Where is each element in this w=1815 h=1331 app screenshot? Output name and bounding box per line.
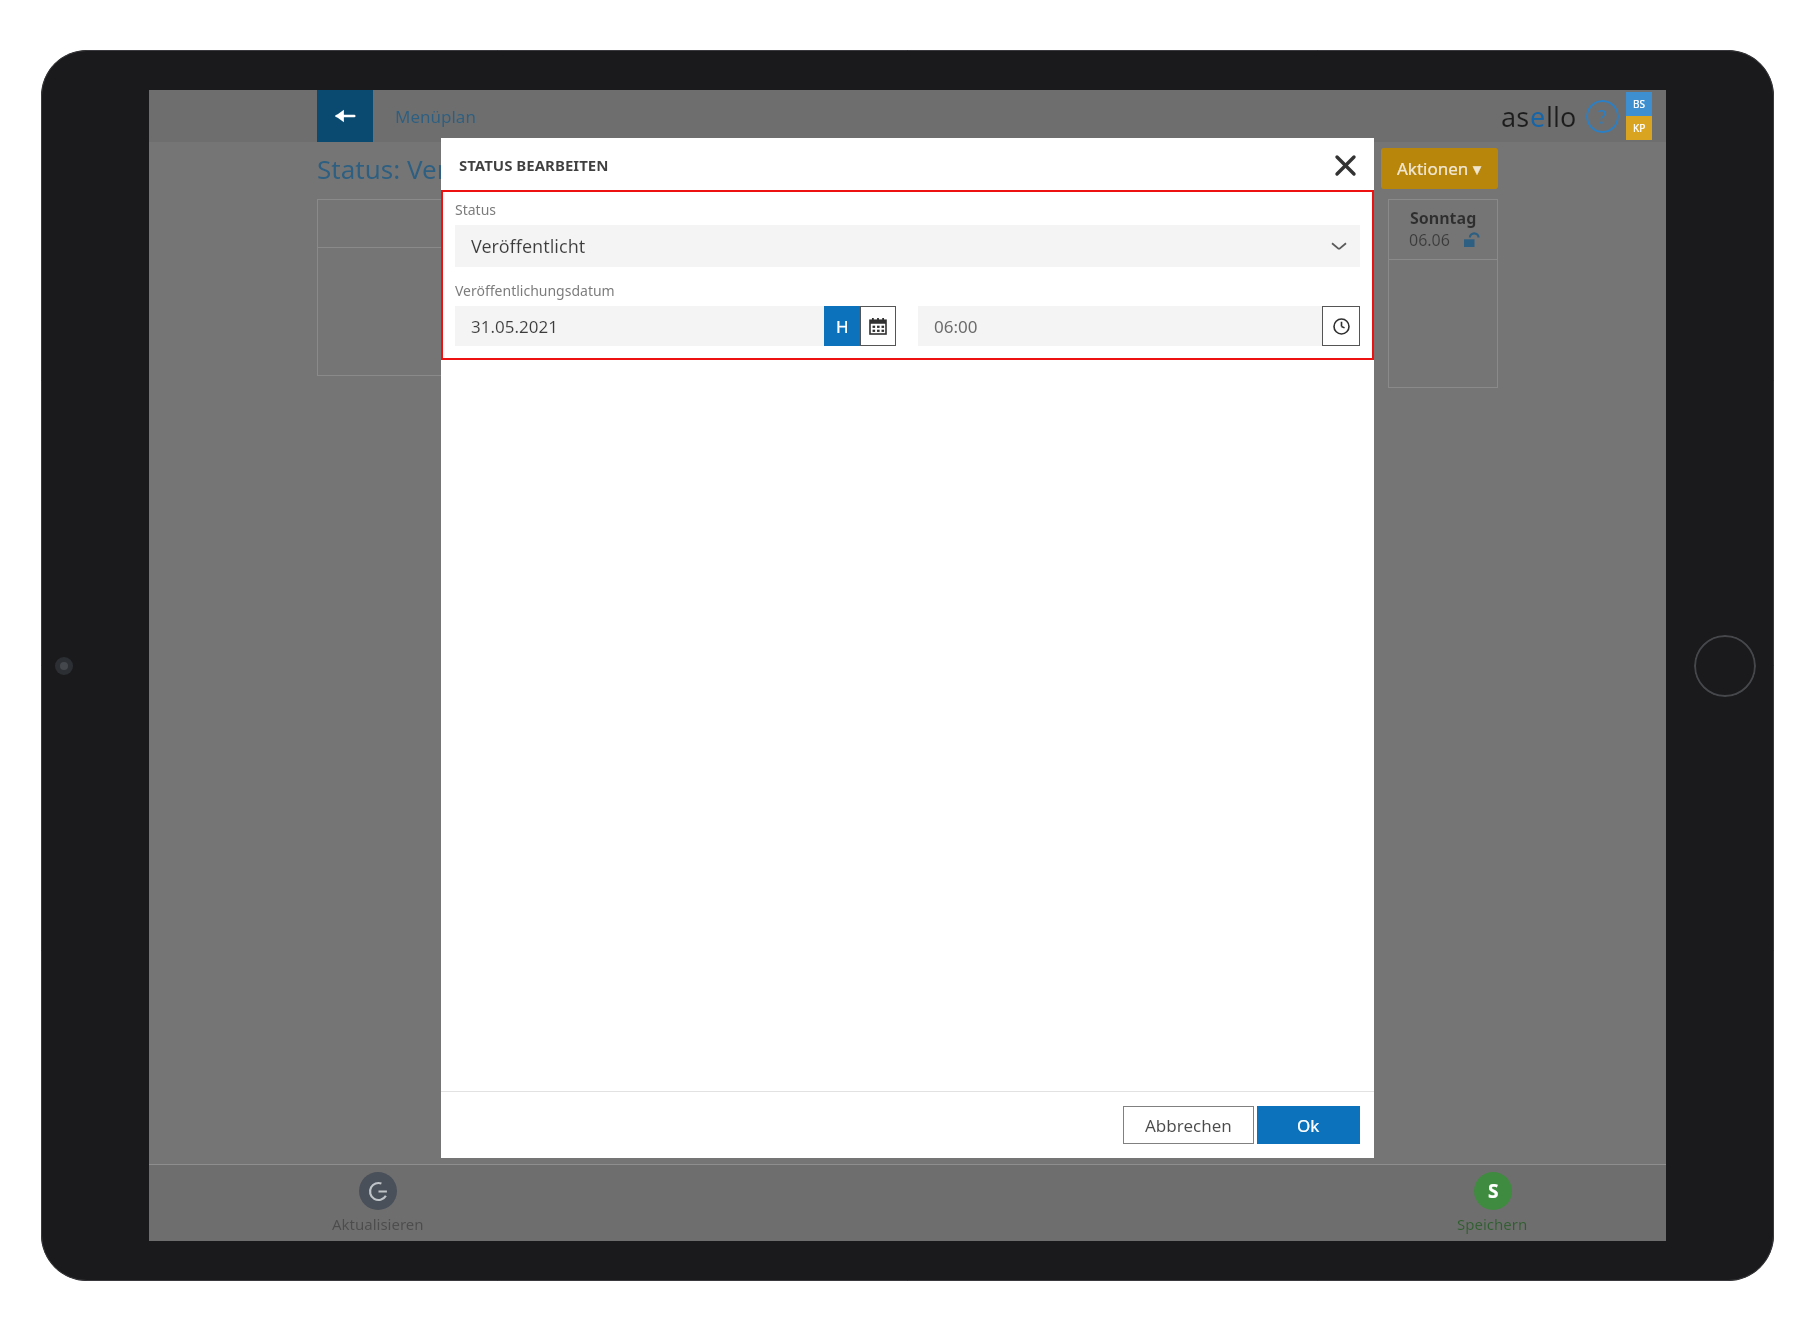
staticText: H <box>836 315 849 338</box>
button[interactable]: 06:00 <box>918 306 1360 346</box>
button[interactable]: Home <box>1694 635 1756 697</box>
staticText: Veröffentlichungsdatum <box>455 281 615 300</box>
button[interactable]: Hinzufügen <box>589 270 666 321</box>
button[interactable]: Zurück <box>317 90 373 142</box>
button[interactable]: H <box>824 306 860 346</box>
staticText: Status <box>455 200 497 219</box>
button[interactable]: BS <box>1626 92 1652 116</box>
button[interactable]: Kalender <box>860 306 896 346</box>
staticText: Aktualisieren <box>332 1214 424 1234</box>
staticText: ? <box>1598 104 1607 130</box>
staticText: Ok <box>1297 1114 1320 1137</box>
button[interactable]: S <box>1457 1172 1528 1234</box>
staticText: 31.05.2021 <box>471 315 558 338</box>
staticText: S <box>1488 1178 1499 1204</box>
button[interactable]: Schließen <box>1332 152 1358 178</box>
staticText: STATUS BEARBEITEN <box>459 155 609 175</box>
button[interactable]: KP <box>1626 116 1652 140</box>
staticText: BS <box>1633 97 1645 111</box>
button[interactable]: Veröffentlicht <box>455 225 1360 267</box>
button[interactable]: Entsperrt <box>1464 233 1478 247</box>
button[interactable]: Aktualisieren <box>332 1172 424 1234</box>
staticText: KP <box>1633 121 1646 135</box>
staticText: Veröffentlicht <box>471 234 586 259</box>
staticText: llo <box>1546 98 1577 135</box>
staticText: Sonntag <box>1410 207 1477 229</box>
staticText: e <box>1530 98 1546 135</box>
staticText: as <box>1501 98 1530 135</box>
staticText: Aktionen ▾ <box>1397 157 1482 180</box>
button[interactable]: Hilfe <box>1586 100 1619 133</box>
button[interactable]: Ok <box>1257 1106 1360 1144</box>
staticText: Speichern <box>1457 1214 1528 1234</box>
button[interactable]: Abbrechen <box>1123 1106 1254 1144</box>
staticText: Hinzufügen <box>589 302 666 321</box>
button[interactable]: Uhrzeit <box>1322 306 1360 346</box>
staticText: 06.06 <box>1409 229 1450 251</box>
staticText: Menüplan <box>395 105 476 128</box>
staticText: DELI <box>1326 156 1367 182</box>
staticText: 06:00 <box>934 315 978 338</box>
button[interactable]: Aktionen ▾ <box>1381 148 1498 189</box>
button[interactable]: 31.05.2021 <box>455 306 896 346</box>
staticText: Status: Veröffentlicht <box>317 151 572 186</box>
staticText: Abbrechen <box>1145 1114 1232 1137</box>
